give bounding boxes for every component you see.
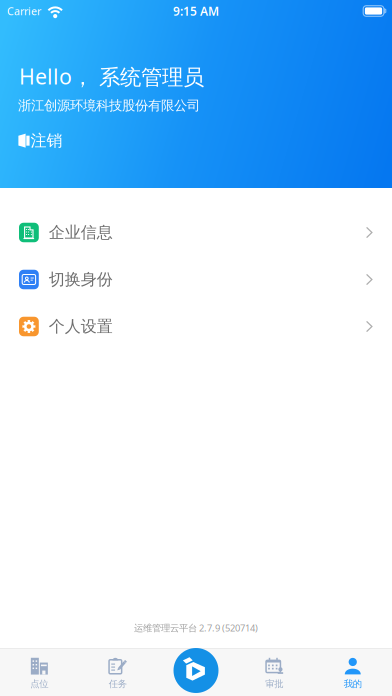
staticText: 浙江创源环境科技股份有限公司 (18, 97, 200, 114)
staticText: 个人设置 (49, 317, 113, 336)
button[interactable]: 点位 (0, 648, 78, 696)
staticText: 企业信息 (49, 223, 113, 242)
staticText: 我的 (344, 678, 362, 690)
button[interactable]: 审批 (235, 648, 313, 696)
button[interactable]: 切换身份 (0, 256, 392, 303)
staticText: 点位 (30, 678, 48, 690)
button[interactable]: 我的 (313, 648, 392, 696)
staticText: 切换身份 (49, 270, 113, 289)
staticText: 审批 (265, 678, 283, 690)
staticText: Carrier (7, 4, 41, 18)
button[interactable]: 企业信息 (0, 209, 392, 256)
button[interactable]: 任务 (78, 648, 157, 696)
staticText: Hello， 系统管理员 (19, 62, 204, 90)
button[interactable]: 注销 (0, 130, 62, 151)
staticText: 9:15 AM (173, 3, 219, 19)
staticText: 注销 (30, 131, 62, 150)
button[interactable]: 扫一扫 (173, 648, 218, 693)
staticText: 任务 (109, 678, 127, 690)
button[interactable]: 个人设置 (0, 303, 392, 350)
staticText: 运维管理云平台 2.7.9 (520714) (134, 622, 258, 634)
